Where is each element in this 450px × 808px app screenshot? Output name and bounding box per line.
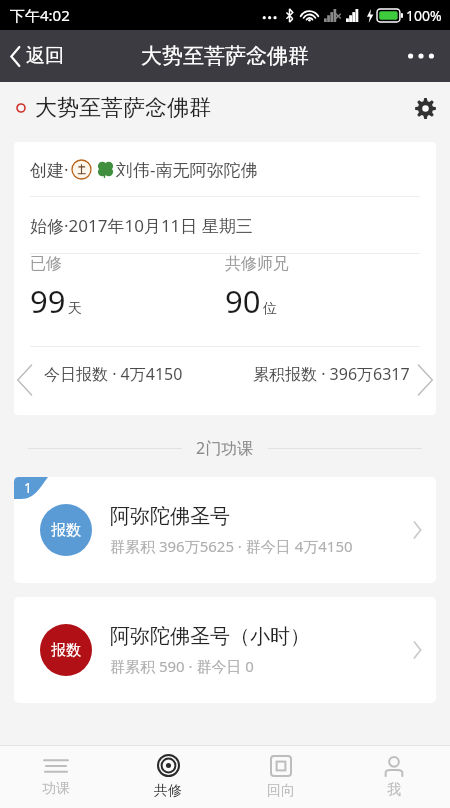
button[interactable]: Next	[411, 359, 440, 401]
staticText: 回向	[267, 782, 295, 800]
staticText: 共修	[154, 782, 182, 800]
staticText: 大势至菩萨念佛群	[141, 43, 309, 69]
button[interactable]: 共修	[112, 747, 224, 807]
button[interactable]: 我	[337, 748, 450, 806]
staticText: 100%	[406, 6, 442, 25]
staticText: 功课	[42, 780, 70, 798]
staticText: 阿弥陀佛圣号（小时）	[110, 624, 310, 649]
button[interactable]: Settings	[401, 86, 450, 131]
staticText: 始修·2017年10月11日 星期三	[30, 214, 253, 237]
button[interactable]: 创建·	[14, 142, 436, 415]
staticText: 天	[68, 300, 82, 318]
staticText: 阿弥陀佛圣号	[110, 504, 230, 529]
button[interactable]: More options	[392, 39, 450, 73]
staticText: 已修	[30, 254, 62, 274]
staticText: 大势至菩萨念佛群	[35, 94, 211, 122]
button[interactable]: Open	[399, 508, 436, 552]
staticText: 报数	[51, 521, 81, 540]
staticText: 共修师兄	[225, 254, 289, 274]
staticText: 2门功课	[196, 437, 254, 459]
button[interactable]: 返回	[0, 36, 76, 76]
staticText: 累积报数 · 396万6317	[253, 363, 410, 385]
staticText: 返回	[26, 44, 64, 68]
staticText: 刘伟-南无阿弥陀佛	[116, 158, 258, 181]
button[interactable]: 功课	[0, 750, 112, 805]
staticText: 群累积 590 · 群今日 0	[110, 656, 254, 676]
staticText: 群累积 396万5625 · 群今日 4万4150	[110, 536, 353, 556]
staticText: 99	[30, 280, 66, 322]
button[interactable]: Previous	[10, 359, 39, 401]
staticText: 创建·	[30, 158, 69, 181]
button[interactable]: 报数	[14, 477, 436, 583]
button[interactable]: Open	[399, 628, 436, 672]
staticText: 今日报数 · 4万4150	[44, 363, 253, 385]
staticText: 下午4:02	[10, 5, 70, 25]
button[interactable]: 报数	[14, 597, 436, 703]
staticText: 1	[24, 478, 33, 497]
button[interactable]: 回向	[224, 748, 337, 807]
staticText: 报数	[51, 641, 81, 660]
staticText: 90	[225, 280, 261, 322]
staticText: 我	[387, 781, 401, 799]
staticText: 位	[263, 300, 277, 318]
